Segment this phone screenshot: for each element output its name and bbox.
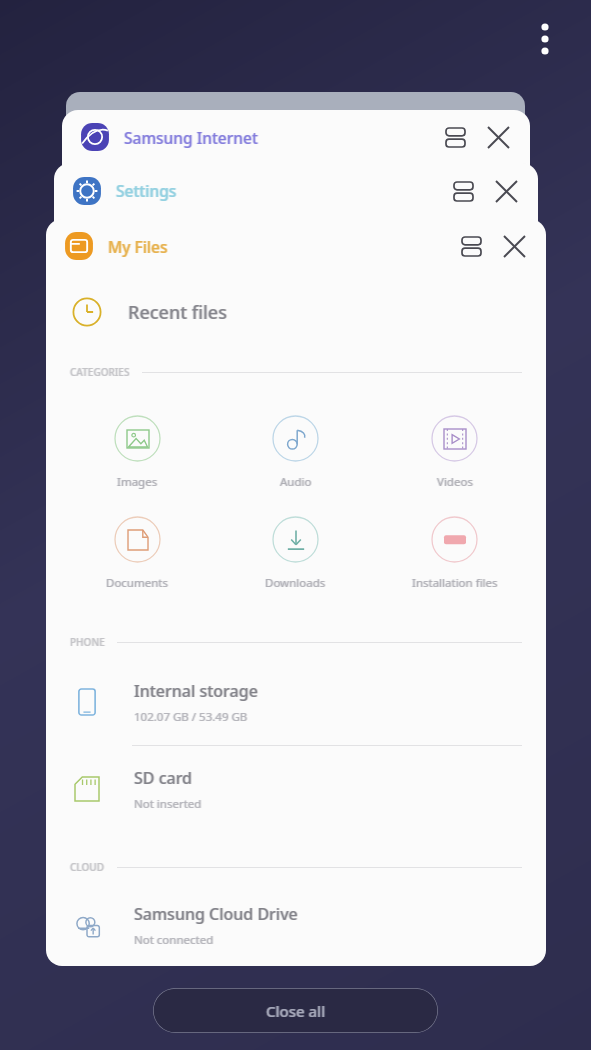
staticText: SD card [135, 767, 194, 789]
staticText: Documents [107, 575, 169, 591]
staticText: Not connected [134, 932, 214, 948]
staticText: Samsung Cloud Drive [134, 903, 298, 925]
staticText: Internal storage [135, 680, 259, 702]
staticText: CLOUD [69, 860, 104, 874]
staticText: Downloads [265, 575, 326, 591]
button[interactable]: Videos [375, 411, 534, 494]
staticText: 102.07 GB / 53.49 GB [135, 709, 249, 725]
staticText: Settings [117, 180, 178, 201]
staticText: Downloads [264, 575, 325, 591]
staticText: My Files [108, 236, 168, 257]
staticText: PHONE [71, 635, 106, 649]
button[interactable]: Samsung Cloud Drive [46, 884, 546, 966]
staticText: Downloads [266, 575, 327, 591]
staticText: Not inserted [134, 796, 202, 812]
staticText: Settings [115, 180, 176, 201]
button[interactable] [62, 229, 96, 263]
staticText: Recent files [129, 300, 228, 325]
staticText: Installation files [411, 575, 497, 591]
staticText: Samsung Internet [123, 127, 257, 148]
button[interactable]: Close all [153, 988, 438, 1033]
staticText: CATEGORIES [69, 365, 129, 379]
staticText: 102.07 GB / 53.49 GB [134, 709, 248, 725]
staticText: CLOUD [70, 860, 105, 874]
staticText: CATEGORIES [71, 365, 131, 379]
button[interactable]: More options [518, 12, 572, 66]
button[interactable]: Close [496, 228, 532, 264]
button[interactable] [70, 174, 104, 208]
staticText: Not connected [133, 932, 213, 948]
button[interactable]: Open in split screen view [454, 229, 488, 263]
staticText: Internal storage [134, 680, 258, 702]
staticText: Installation files [413, 575, 499, 591]
staticText: Audio [281, 474, 313, 490]
button[interactable]: Installation files [375, 512, 534, 595]
staticText: Close all [267, 1001, 327, 1021]
button[interactable]: SD card [46, 746, 546, 832]
button[interactable]: Open in split screen view [446, 174, 480, 208]
button[interactable]: Recent files [46, 273, 546, 351]
staticText: SD card [134, 767, 193, 789]
staticText: SD card [133, 767, 192, 789]
button[interactable]: Samsung Internet [62, 110, 530, 174]
staticText: Audio [279, 474, 311, 490]
staticText: My Files [109, 236, 169, 257]
staticText: Samsung Internet [125, 127, 259, 148]
button[interactable]: Audio [216, 411, 375, 494]
staticText: Samsung Cloud Drive [133, 903, 297, 925]
staticText: Samsung Internet [124, 127, 258, 148]
button[interactable] [66, 92, 525, 122]
button[interactable]: Settings [54, 163, 538, 228]
staticText: Not connected [135, 932, 215, 948]
staticText: PHONE [70, 635, 105, 649]
staticText: CLOUD [71, 860, 106, 874]
staticText: Images [118, 474, 159, 490]
button[interactable]: Documents [58, 512, 216, 595]
staticText: Documents [106, 575, 168, 591]
staticText: Not inserted [135, 796, 203, 812]
staticText: Videos [438, 474, 474, 490]
button[interactable]: Downloads [216, 512, 375, 595]
button[interactable]: Images [58, 411, 216, 494]
staticText: Videos [436, 474, 472, 490]
staticText: Settings [116, 180, 177, 201]
button[interactable]: Internal storage [46, 659, 546, 746]
staticText: Close all [266, 1001, 326, 1021]
button[interactable]: Close [480, 119, 516, 155]
staticText: Internal storage [133, 680, 257, 702]
staticText: 102.07 GB / 53.49 GB [133, 709, 247, 725]
staticText: Recent files [128, 300, 227, 325]
staticText: Images [116, 474, 157, 490]
staticText: Videos [437, 474, 473, 490]
staticText: Images [117, 474, 158, 490]
staticText: Samsung Cloud Drive [135, 903, 299, 925]
staticText: Installation files [412, 575, 498, 591]
button[interactable]: Open in split screen view [438, 120, 472, 154]
staticText: Not inserted [133, 796, 201, 812]
button[interactable] [78, 120, 112, 154]
staticText: Audio [280, 474, 312, 490]
staticText: CATEGORIES [70, 365, 130, 379]
staticText: Recent files [127, 300, 226, 325]
staticText: Close all [265, 1001, 325, 1021]
staticText: My Files [107, 236, 167, 257]
staticText: PHONE [69, 635, 104, 649]
button[interactable]: Close [488, 173, 524, 209]
staticText: Documents [105, 575, 167, 591]
